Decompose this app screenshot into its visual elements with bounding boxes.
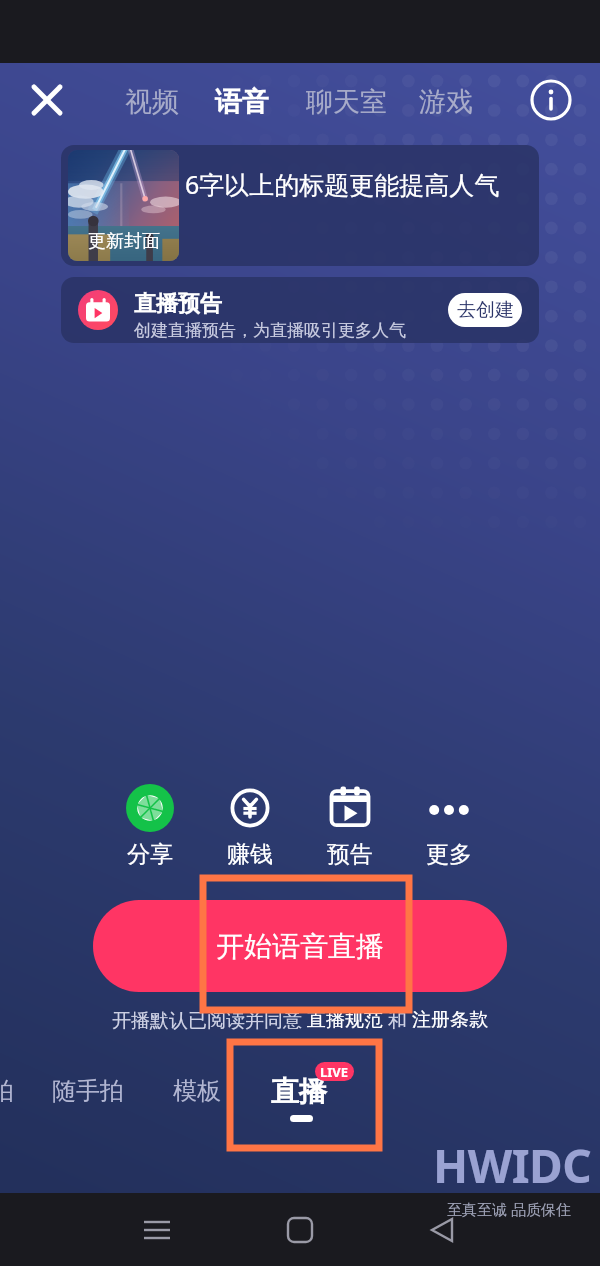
staticText: 模板 — [173, 1076, 221, 1106]
button[interactable]: Information — [529, 78, 573, 122]
staticText: 预告 — [327, 840, 373, 869]
staticText: 和 — [383, 1007, 412, 1033]
staticText: 视频 — [125, 85, 179, 119]
button[interactable]: Back — [418, 1206, 466, 1254]
staticText: 随手拍 — [52, 1076, 124, 1106]
staticText: 开播默认已阅读并同意 — [112, 1007, 307, 1033]
staticText: 拍 — [0, 1076, 14, 1106]
button[interactable]: 随手拍 — [48, 1072, 128, 1110]
button[interactable]: 注册条款 — [412, 1008, 488, 1032]
staticText: 直播 — [271, 1074, 327, 1109]
staticText: 赚钱 — [227, 840, 273, 869]
staticText: 去创建 — [457, 298, 514, 322]
button[interactable]: 语音 — [215, 81, 269, 123]
staticText: 注册条款 — [412, 1008, 488, 1032]
button[interactable]: 直播规范 — [307, 1008, 383, 1032]
staticText: 更多 — [426, 840, 472, 869]
button[interactable]: 赚钱 — [210, 780, 290, 869]
staticText: 直播预告 — [134, 290, 222, 318]
button[interactable]: 开始语音直播 — [93, 900, 507, 992]
staticText: 创建直播预告，为直播吸引更多人气 — [134, 320, 406, 341]
staticText: 开始语音直播 — [216, 929, 384, 964]
button[interactable]: 预告 — [310, 780, 390, 869]
staticText: 语音 — [215, 85, 269, 119]
staticText: HWIDC — [433, 1134, 592, 1197]
button[interactable]: 拍 — [0, 1072, 18, 1110]
button[interactable]: Close — [25, 78, 69, 122]
staticText: 至真至诚 品质保住 — [447, 1199, 571, 1219]
button[interactable]: 去创建 — [448, 293, 522, 327]
button[interactable]: 更新封面 — [61, 145, 539, 266]
button[interactable]: 视频 — [125, 81, 179, 123]
staticText: 聊天室 — [306, 85, 387, 119]
staticText: 6字以上的标题更能提高人气 — [185, 167, 500, 201]
button[interactable]: Home — [276, 1206, 324, 1254]
staticText: 更新封面 — [88, 230, 160, 253]
staticText: LIVE — [320, 1063, 349, 1081]
button[interactable]: 模板 — [169, 1072, 225, 1110]
staticText: 游戏 — [419, 85, 473, 119]
button[interactable]: 更多 — [409, 780, 489, 869]
button[interactable]: 聊天室 — [306, 81, 387, 123]
button[interactable]: 分享 — [110, 780, 190, 869]
button[interactable]: 直播预告 — [61, 277, 539, 343]
staticText: 分享 — [127, 840, 173, 869]
button[interactable]: 直播 — [262, 1059, 362, 1131]
button[interactable]: Recents — [133, 1206, 181, 1254]
staticText: 直播规范 — [307, 1008, 383, 1032]
button[interactable]: 游戏 — [419, 81, 473, 123]
